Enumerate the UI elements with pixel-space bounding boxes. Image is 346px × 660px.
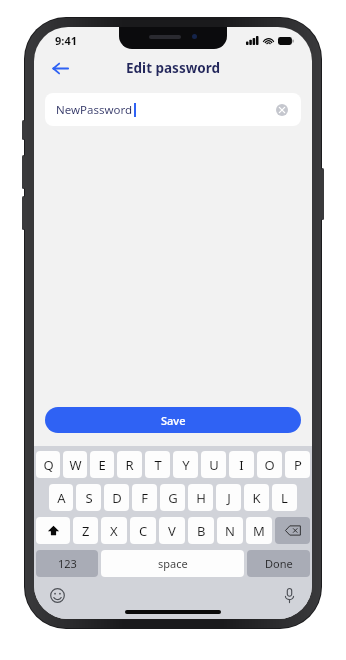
button[interactable]: M <box>246 517 272 544</box>
button[interactable]: P <box>285 451 310 478</box>
staticText: Save <box>161 413 186 428</box>
button[interactable]: Back <box>44 52 76 84</box>
staticText: K <box>252 489 261 507</box>
staticText: Z <box>82 522 90 540</box>
button[interactable]: A <box>49 484 73 511</box>
button[interactable]: K <box>244 484 269 511</box>
button[interactable]: G <box>160 484 185 511</box>
button[interactable]: U <box>201 451 226 478</box>
staticText: L <box>281 489 288 507</box>
staticText: V <box>168 522 176 540</box>
staticText: G <box>168 489 178 507</box>
staticText: R <box>125 456 134 474</box>
staticText: I <box>239 456 244 474</box>
button[interactable]: Delete <box>275 517 310 544</box>
button[interactable]: H <box>188 484 213 511</box>
button[interactable]: Shift <box>36 517 70 544</box>
staticText: P <box>294 456 302 474</box>
button[interactable]: NewPassword <box>45 93 301 126</box>
button[interactable]: J <box>216 484 241 511</box>
staticText: H <box>196 489 206 507</box>
button[interactable]: L <box>272 484 297 511</box>
staticText: Y <box>182 456 190 474</box>
button[interactable]: Dictate <box>278 584 300 606</box>
staticText: Done <box>265 556 293 571</box>
button[interactable]: Y <box>173 451 198 478</box>
button[interactable]: 123 <box>36 550 98 577</box>
staticText: T <box>154 456 162 474</box>
staticText: C <box>139 522 148 540</box>
button[interactable]: Z <box>73 517 98 544</box>
staticText: 9:41 <box>55 33 77 48</box>
button[interactable]: space <box>101 550 244 577</box>
staticText: O <box>264 456 275 474</box>
staticText: A <box>57 489 66 507</box>
button[interactable]: Done <box>247 550 310 577</box>
staticText: M <box>253 522 265 540</box>
staticText: Edit password <box>126 59 220 77</box>
staticText: S <box>85 489 93 507</box>
staticText: U <box>209 456 219 474</box>
staticText: space <box>158 556 188 571</box>
button[interactable]: Emoji <box>46 584 68 606</box>
staticText: B <box>197 522 206 540</box>
button[interactable]: O <box>257 451 282 478</box>
button[interactable]: Q <box>36 451 60 478</box>
staticText: NewPassword <box>56 102 133 118</box>
button[interactable]: E <box>90 451 114 478</box>
staticText: Q <box>43 456 54 474</box>
staticText: F <box>141 489 148 507</box>
button[interactable]: Save <box>45 407 301 433</box>
button[interactable]: I <box>229 451 254 478</box>
button[interactable]: C <box>130 517 156 544</box>
staticText: X <box>110 522 118 540</box>
staticText: N <box>225 522 235 540</box>
button[interactable]: Clear text <box>273 101 291 119</box>
staticText: 123 <box>58 556 77 571</box>
staticText: D <box>112 489 122 507</box>
button[interactable]: W <box>63 451 87 478</box>
button[interactable]: N <box>217 517 243 544</box>
button[interactable]: D <box>104 484 129 511</box>
button[interactable]: V <box>159 517 185 544</box>
button[interactable]: T <box>145 451 170 478</box>
staticText: J <box>227 489 231 507</box>
button[interactable]: R <box>117 451 142 478</box>
button[interactable]: S <box>76 484 101 511</box>
staticText: W <box>69 456 82 474</box>
button[interactable]: F <box>132 484 157 511</box>
staticText: E <box>98 456 106 474</box>
button[interactable]: B <box>188 517 214 544</box>
button[interactable]: X <box>101 517 127 544</box>
